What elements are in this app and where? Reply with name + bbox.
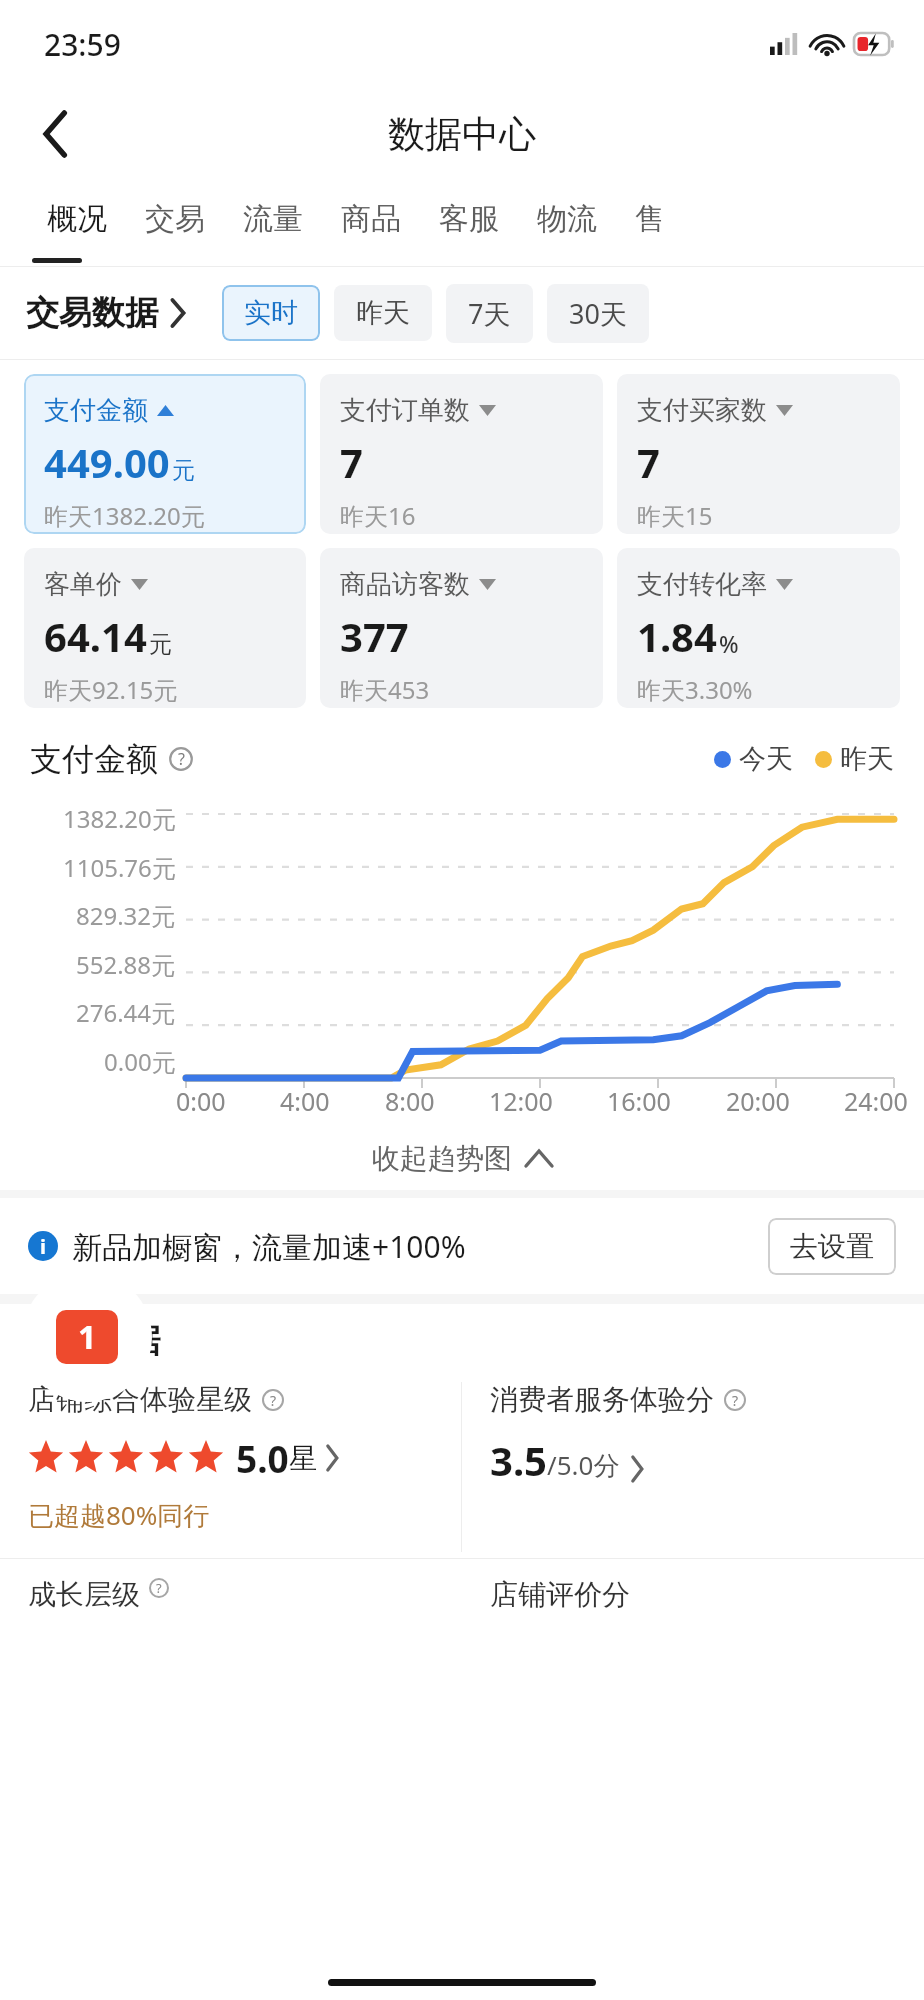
button[interactable]: 昨天: [334, 285, 432, 341]
staticText: 店铺综合体验星级: [28, 1382, 252, 1417]
staticText: 64.14: [44, 609, 147, 663]
staticText: 流量: [243, 200, 303, 238]
button[interactable]: Notification: [22, 1272, 152, 1402]
staticText: 元: [149, 630, 172, 659]
staticText: 客服: [439, 200, 499, 238]
button[interactable]: 商品访客数: [320, 548, 603, 708]
staticText: 交易: [145, 200, 205, 238]
staticText: 支付买家数: [637, 394, 767, 427]
staticText: 昨天: [356, 296, 410, 330]
staticText: 3.5: [490, 1433, 547, 1487]
staticText: 成长层级: [28, 1577, 140, 1612]
staticText: 客单价: [44, 568, 122, 601]
button[interactable]: 支付买家数: [617, 374, 900, 534]
button[interactable]: 支付订单数: [320, 374, 603, 534]
staticText: 数据中心: [388, 111, 536, 158]
staticText: 已超越80%同行: [28, 1497, 210, 1533]
staticText: 7天: [468, 295, 511, 332]
button[interactable]: 概况: [28, 200, 126, 238]
staticText: 7: [637, 435, 660, 489]
button[interactable]: 支付转化率: [617, 548, 900, 708]
staticText: 实时: [244, 296, 298, 330]
staticText: 支付金额: [44, 394, 148, 427]
button[interactable]: 去设置: [768, 1218, 896, 1275]
staticText: 1105.76元: [63, 851, 176, 884]
staticText: 经营数据: [28, 1320, 160, 1362]
staticText: 449.00: [44, 435, 170, 489]
staticText: i: [40, 1233, 46, 1260]
staticText: 5.0: [236, 1433, 289, 1483]
staticText: 23:59: [44, 24, 121, 65]
staticText: 星: [289, 1441, 317, 1476]
staticText: 377: [340, 609, 409, 663]
button[interactable]: 支付金额: [24, 374, 306, 534]
staticText: 昨天16: [340, 499, 416, 532]
button[interactable]: 流量: [224, 200, 322, 238]
staticText: 1: [78, 1315, 97, 1359]
button[interactable]: 客服: [420, 200, 518, 238]
staticText: 20:00: [726, 1084, 790, 1118]
staticText: 12:00: [489, 1084, 553, 1118]
staticText: 物流: [537, 200, 597, 238]
staticText: ?: [156, 1579, 162, 1597]
staticText: 消费者服务体验分: [490, 1382, 714, 1417]
staticText: 30天: [569, 295, 627, 332]
staticText: 8:00: [385, 1084, 435, 1118]
staticText: 昨天1382.20元: [44, 499, 205, 532]
staticText: 今天: [739, 742, 793, 776]
staticText: 概况: [47, 200, 107, 238]
button[interactable]: 5.0: [28, 1433, 339, 1483]
staticText: 829.32元: [76, 899, 176, 932]
staticText: 7: [340, 435, 363, 489]
staticText: 收起趋势图: [372, 1141, 512, 1176]
button[interactable]: 交易数据: [26, 292, 186, 334]
button[interactable]: 售: [616, 200, 684, 238]
button[interactable]: 实时: [222, 285, 320, 341]
staticText: ?: [270, 1391, 277, 1410]
staticText: 支付金额: [30, 739, 158, 779]
staticText: 552.88元: [76, 948, 176, 981]
staticText: 售: [635, 200, 665, 238]
staticText: 0.00元: [104, 1045, 176, 1078]
button[interactable]: Help: [168, 746, 194, 772]
button[interactable]: 收起趋势图: [0, 1126, 924, 1190]
staticText: 昨天15: [637, 499, 713, 532]
staticText: 16:00: [607, 1084, 671, 1118]
staticText: 4:00: [280, 1084, 330, 1118]
button[interactable]: 3.5: [490, 1433, 644, 1487]
staticText: 0:00: [176, 1084, 226, 1118]
staticText: 昨天: [840, 742, 894, 776]
staticText: 276.44元: [76, 996, 176, 1029]
button[interactable]: Back: [26, 104, 86, 164]
staticText: 交易数据: [26, 292, 158, 334]
staticText: 1382.20元: [63, 802, 176, 835]
button[interactable]: 物流: [518, 200, 616, 238]
staticText: 去设置: [790, 1229, 874, 1264]
staticText: 商品访客数: [340, 568, 470, 601]
staticText: ?: [732, 1391, 739, 1410]
staticText: 昨天92.15元: [44, 673, 178, 706]
staticText: 24:00: [844, 1084, 908, 1118]
staticText: ?: [178, 748, 185, 770]
button[interactable]: 商品: [322, 200, 420, 238]
staticText: 元: [172, 456, 195, 485]
staticText: 商品: [341, 200, 401, 238]
staticText: 昨天453: [340, 673, 430, 706]
staticText: 支付转化率: [637, 568, 767, 601]
button[interactable]: 交易: [126, 200, 224, 238]
button[interactable]: 30天: [547, 284, 649, 343]
staticText: 支付订单数: [340, 394, 470, 427]
staticText: %: [719, 628, 739, 659]
staticText: 新品加橱窗，流量加速+100%: [72, 1226, 466, 1267]
staticText: 1.84: [637, 609, 717, 663]
staticText: 店铺评价分: [490, 1577, 630, 1612]
button[interactable]: 7天: [446, 284, 533, 343]
button[interactable]: 客单价: [24, 548, 306, 708]
staticText: 昨天3.30%: [637, 673, 753, 706]
staticText: /5.0分: [547, 1447, 620, 1483]
